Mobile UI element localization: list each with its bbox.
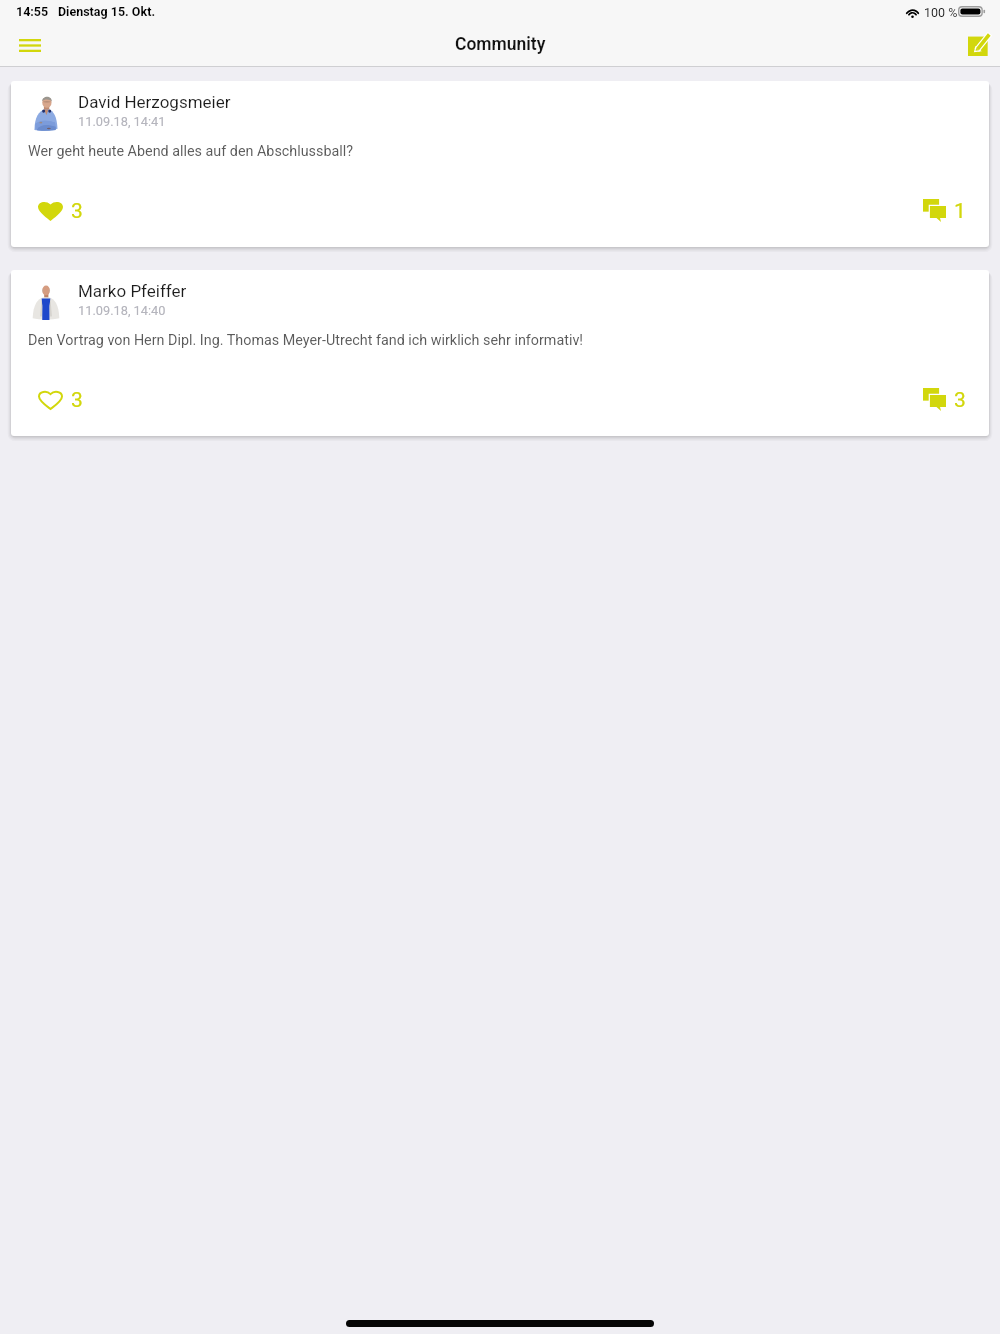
button[interactable]: Like this post xyxy=(35,195,86,226)
staticText: Wer geht heute Abend alles auf den Absch… xyxy=(28,143,354,160)
staticText: David Herzogsmeier xyxy=(78,92,231,112)
staticText: Marko Pfeiffer xyxy=(78,281,187,301)
button[interactable]: Marko Pfeiffer xyxy=(11,270,989,436)
button[interactable]: Compose new post xyxy=(959,24,999,64)
staticText: 1 xyxy=(954,199,966,224)
button[interactable]: View comments xyxy=(920,195,969,226)
staticText: 11.09.18, 14:41 xyxy=(78,114,166,129)
staticText: 11.09.18, 14:40 xyxy=(78,303,166,318)
staticText: 14:55 xyxy=(16,4,49,19)
staticText: Den Vortrag von Hern Dipl. Ing. Thomas M… xyxy=(28,332,584,349)
staticText: 3 xyxy=(71,199,83,224)
button[interactable]: Menu xyxy=(10,25,50,65)
staticText: 3 xyxy=(71,388,83,413)
staticText: 3 xyxy=(954,388,966,413)
staticText: Dienstag 15. Okt. xyxy=(58,4,156,19)
button[interactable]: View comments xyxy=(920,384,969,415)
staticText: Community xyxy=(455,34,546,55)
button[interactable]: Like this post xyxy=(35,384,86,415)
button[interactable]: David Herzogsmeier xyxy=(11,81,989,247)
staticText: 100 % xyxy=(924,5,958,20)
